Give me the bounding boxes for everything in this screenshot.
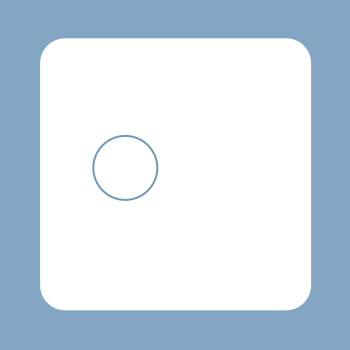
button[interactable]: Record bbox=[93, 136, 157, 200]
